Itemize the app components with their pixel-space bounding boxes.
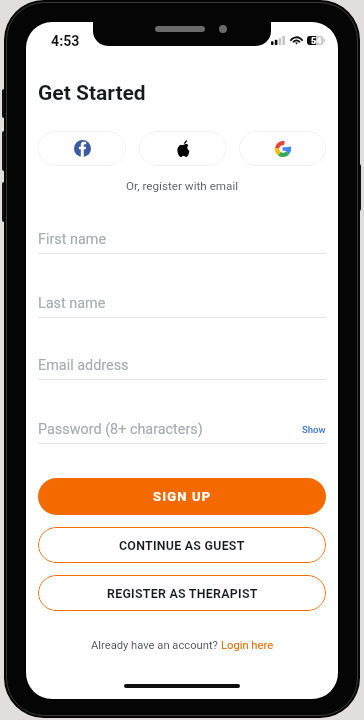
- staticText: Already have an account?: [91, 639, 221, 652]
- staticText: Password (8+ characters): [38, 421, 203, 438]
- staticText: Get Started: [38, 81, 146, 106]
- staticText: Login here: [221, 639, 274, 652]
- button[interactable]: Email address: [38, 346, 326, 388]
- button[interactable]: Sign up with Facebook: [38, 131, 126, 166]
- staticText: 4:53: [51, 33, 80, 50]
- button[interactable]: First name: [38, 220, 326, 262]
- button[interactable]: SIGN UP: [38, 478, 326, 515]
- staticText: Last name: [38, 295, 106, 312]
- button[interactable]: Sign up with Google: [239, 131, 326, 166]
- staticText: Or, register with email: [126, 179, 239, 193]
- button[interactable]: CONTINUE AS GUEST: [38, 527, 326, 563]
- button[interactable]: Password (8+ characters): [38, 410, 326, 452]
- button[interactable]: Sign up with Apple: [139, 131, 226, 166]
- staticText: Email address: [38, 357, 129, 374]
- staticText: First name: [38, 231, 107, 248]
- button[interactable]: REGISTER AS THERAPIST: [38, 575, 326, 611]
- staticText: CONTINUE AS GUEST: [119, 538, 245, 553]
- staticText: SIGN UP: [153, 489, 212, 504]
- staticText: 54: [311, 36, 322, 47]
- staticText: Show: [302, 424, 326, 435]
- button[interactable]: Already have an account?: [91, 639, 274, 652]
- button[interactable]: Last name: [38, 284, 326, 326]
- staticText: REGISTER AS THERAPIST: [107, 586, 258, 601]
